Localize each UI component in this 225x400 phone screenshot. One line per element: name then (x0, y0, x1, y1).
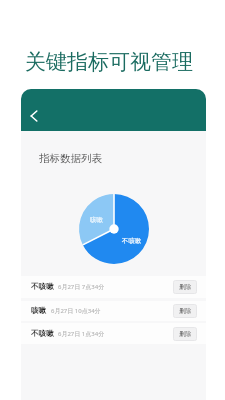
staticText: 6月27日 1点34分 (58, 330, 105, 338)
staticText: 删除 (179, 283, 192, 291)
staticText: 6月27日 7点34分 (58, 283, 105, 291)
button[interactable]: 不咳嗽 (21, 323, 206, 344)
button[interactable]: 咳嗽 (21, 301, 206, 321)
staticText: 不咳嗽 (31, 282, 54, 292)
staticText: 咳嗽 (90, 216, 103, 224)
button[interactable]: 删除 (173, 280, 197, 294)
staticText: 删除 (179, 330, 192, 338)
staticText: 指标数据列表 (39, 152, 102, 165)
staticText: 删除 (179, 307, 192, 315)
staticText: 关键指标可视管理 (25, 49, 193, 75)
button[interactable]: Back (22, 104, 46, 128)
button[interactable]: 删除 (173, 327, 197, 341)
button[interactable]: 不咳嗽 (21, 276, 206, 298)
staticText: 不咳嗽 (122, 237, 142, 245)
staticText: 咳嗽 (31, 306, 47, 316)
staticText: 6月27日 10点34分 (51, 307, 101, 315)
button[interactable]: 删除 (173, 304, 197, 318)
staticText: 不咳嗽 (31, 329, 54, 339)
